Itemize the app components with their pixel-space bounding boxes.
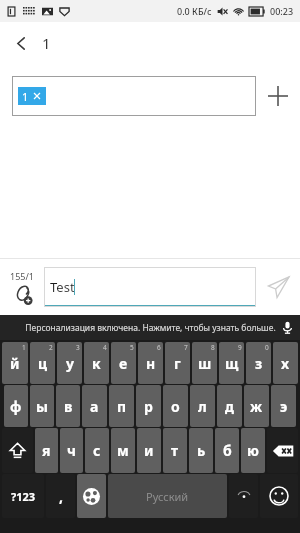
button[interactable]: в — [56, 385, 80, 427]
button[interactable]: х — [273, 342, 298, 384]
button[interactable]: щ — [219, 342, 244, 384]
staticText: ч — [67, 441, 76, 460]
staticText: 1 — [42, 33, 51, 53]
staticText: 9 — [238, 343, 242, 352]
button[interactable]: л — [190, 385, 215, 427]
button[interactable]: н — [138, 342, 163, 384]
button[interactable]: 1 — [12, 76, 256, 116]
staticText: 1 — [22, 343, 26, 352]
button[interactable]: а — [82, 385, 107, 427]
staticText: 3 — [76, 343, 80, 352]
button[interactable]: Change language — [77, 474, 106, 518]
staticText: Test — [50, 278, 75, 296]
staticText: 4 — [103, 343, 107, 352]
staticText: Персонализация включена. Нажмите, чтобы … — [25, 322, 276, 334]
button[interactable]: ш — [192, 342, 217, 384]
button[interactable]: м — [111, 428, 135, 473]
staticText: 1 — [22, 89, 29, 104]
staticText: 2 — [49, 343, 53, 352]
button[interactable]: Send — [256, 265, 300, 309]
staticText: я — [42, 441, 51, 460]
staticText: 8 — [211, 343, 215, 352]
staticText: Русский — [146, 489, 189, 504]
staticText: а — [90, 397, 99, 416]
button[interactable]: Attach — [0, 259, 44, 315]
button[interactable]: Русский — [108, 474, 227, 518]
button[interactable]: р — [136, 385, 161, 427]
staticText: 5 — [130, 343, 134, 352]
button[interactable]: Back — [0, 22, 42, 64]
staticText: ь — [197, 441, 206, 460]
staticText: 00:23 — [270, 5, 294, 17]
staticText: з — [255, 354, 263, 373]
staticText: т — [171, 441, 179, 460]
staticText: 0 — [265, 343, 269, 352]
staticText: 6 — [157, 343, 161, 352]
staticText: п — [117, 397, 127, 416]
button[interactable]: ч — [60, 428, 83, 473]
button[interactable]: е — [111, 342, 136, 384]
staticText: р — [144, 397, 153, 416]
button[interactable]: ю — [241, 428, 265, 473]
button[interactable]: Voice input — [274, 315, 300, 340]
staticText: 7 — [184, 343, 188, 352]
staticText: 155/1 — [10, 270, 34, 282]
staticText: н — [146, 354, 156, 373]
button[interactable]: Emoji — [260, 474, 298, 518]
button[interactable]: ы — [30, 385, 54, 427]
staticText: х — [281, 354, 290, 373]
staticText: ф — [10, 397, 22, 416]
staticText: э — [280, 397, 288, 416]
staticText: в — [64, 397, 73, 416]
staticText: б — [223, 441, 232, 460]
staticText: й — [10, 354, 20, 373]
button[interactable]: о — [163, 385, 188, 427]
button[interactable]: й — [2, 342, 28, 384]
button[interactable]: я — [35, 428, 58, 473]
staticText: с — [93, 441, 101, 460]
button[interactable]: т — [163, 428, 187, 473]
button[interactable]: ж — [244, 385, 269, 427]
staticText: щ — [225, 354, 239, 373]
button[interactable]: Backspace — [267, 428, 298, 473]
button[interactable]: ?123 — [2, 474, 44, 518]
staticText: е — [119, 354, 128, 373]
staticText: , — [59, 487, 63, 506]
button[interactable]: з — [246, 342, 271, 384]
button[interactable]: п — [109, 385, 134, 427]
staticText: ш — [198, 354, 212, 373]
button[interactable]: ь — [189, 428, 213, 473]
staticText: ?123 — [11, 489, 36, 504]
staticText: ц — [38, 354, 48, 373]
staticText: ю — [247, 441, 259, 460]
button[interactable]: и — [137, 428, 161, 473]
button[interactable]: к — [84, 342, 109, 384]
button[interactable]: Shift — [2, 428, 33, 473]
button[interactable]: г — [165, 342, 190, 384]
button[interactable]: ф — [4, 385, 28, 427]
staticText: о — [171, 397, 180, 416]
button[interactable]: ц — [30, 342, 55, 384]
button[interactable]: э — [271, 385, 296, 427]
staticText: г — [174, 354, 181, 373]
staticText: ы — [36, 397, 48, 416]
button[interactable]: б — [215, 428, 239, 473]
staticText: л — [198, 397, 207, 416]
button[interactable]: с — [85, 428, 109, 473]
staticText: 0.0 КБ/c — [177, 5, 212, 17]
staticText: к — [92, 354, 101, 373]
button[interactable]: Test — [44, 267, 256, 307]
staticText: у — [66, 354, 74, 373]
button[interactable]: д — [217, 385, 242, 427]
button[interactable]: у — [57, 342, 82, 384]
staticText: м — [117, 441, 129, 460]
staticText: и — [144, 441, 154, 460]
button[interactable]: Period — [229, 474, 258, 518]
staticText: ж — [250, 397, 263, 416]
button[interactable]: Персонализация включена. Нажмите, чтобы … — [0, 315, 300, 340]
staticText: д — [225, 397, 234, 416]
button[interactable]: Add recipient — [256, 74, 300, 118]
button[interactable]: , — [46, 474, 75, 518]
